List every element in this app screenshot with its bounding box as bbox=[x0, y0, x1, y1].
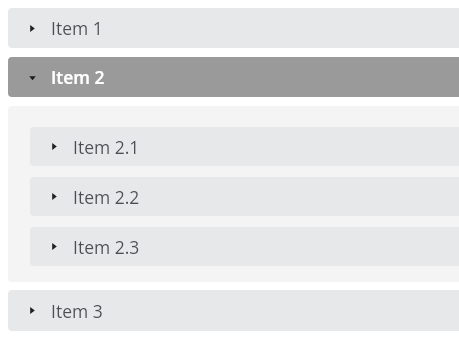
button[interactable]: Item 1 bbox=[8, 8, 459, 48]
staticText: Item 2.2 bbox=[73, 185, 140, 209]
button[interactable]: Item 3 bbox=[8, 290, 459, 331]
button[interactable]: Item 2 bbox=[8, 57, 459, 97]
staticText: Item 2.3 bbox=[73, 235, 140, 259]
button[interactable]: Item 2.3 bbox=[30, 227, 459, 266]
staticText: Item 2.1 bbox=[73, 135, 140, 159]
staticText: Item 3 bbox=[51, 299, 103, 323]
staticText: Item 1 bbox=[51, 16, 103, 40]
staticText: Item 2 bbox=[51, 65, 105, 89]
button[interactable]: Item 2.1 bbox=[30, 127, 459, 166]
button[interactable]: Item 2.2 bbox=[30, 177, 459, 216]
